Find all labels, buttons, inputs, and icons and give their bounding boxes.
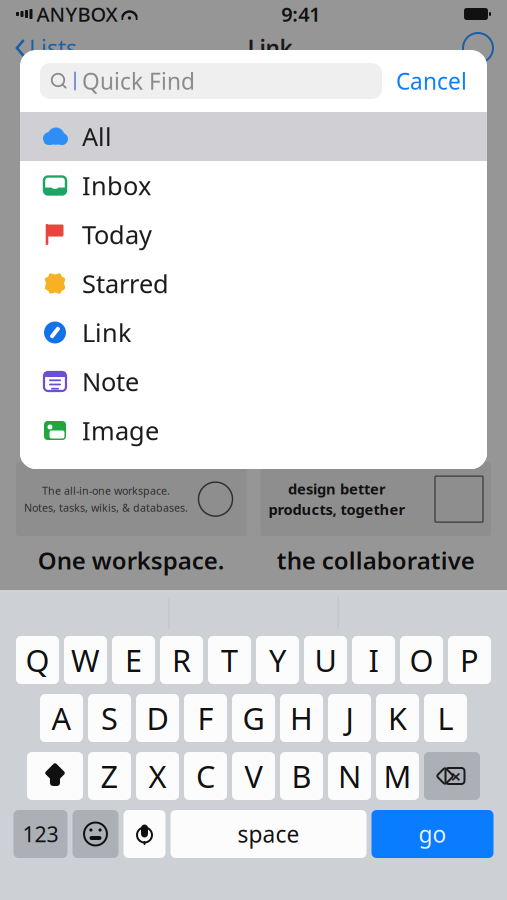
staticText: 123 — [22, 820, 58, 848]
staticText: Link — [82, 316, 132, 349]
button[interactable]: X — [136, 752, 179, 800]
staticText: Image — [82, 414, 159, 447]
button[interactable]: All — [20, 112, 487, 161]
staticText: T — [221, 640, 238, 680]
staticText: R — [172, 640, 191, 680]
staticText: Link — [247, 33, 292, 63]
staticText: Y — [269, 640, 286, 680]
staticText: the collaborative — [277, 544, 475, 576]
staticText: Q — [25, 640, 49, 680]
staticText: Inbox — [82, 169, 151, 202]
button[interactable]: G — [232, 694, 275, 742]
button[interactable]: V — [232, 752, 275, 800]
staticText: Starred — [82, 267, 169, 300]
staticText: U — [314, 640, 336, 680]
staticText: 9:41 — [281, 1, 320, 27]
button[interactable]: M — [376, 752, 419, 800]
button[interactable]: Link — [20, 308, 487, 357]
staticText: Note — [82, 365, 139, 398]
staticText: products, together — [268, 500, 405, 519]
button[interactable]: N — [328, 752, 371, 800]
button[interactable]: 123 — [13, 810, 67, 858]
staticText: go — [418, 819, 446, 849]
staticText: S — [101, 698, 118, 738]
staticText: M — [383, 756, 411, 796]
button[interactable]: J — [328, 694, 371, 742]
staticText: V — [244, 756, 262, 796]
button[interactable]: Today — [20, 210, 487, 259]
button[interactable]: W — [64, 636, 107, 684]
staticText: Today — [82, 218, 152, 251]
staticText: N — [338, 756, 361, 796]
staticText: K — [388, 698, 407, 738]
button[interactable]: B — [280, 752, 323, 800]
staticText: Cancel — [396, 66, 467, 96]
staticText: One workspace. — [38, 544, 225, 576]
staticText: B — [291, 756, 311, 796]
staticText: C — [196, 756, 215, 796]
staticText: F — [197, 698, 213, 738]
button[interactable]: Inbox — [20, 161, 487, 210]
button[interactable]: Dictation — [123, 810, 165, 858]
staticText: ANYBOX — [36, 1, 117, 27]
staticText: P — [460, 640, 479, 680]
button[interactable]: Q — [16, 636, 59, 684]
staticText: design better — [288, 479, 386, 499]
button[interactable]: S — [88, 694, 131, 742]
button[interactable]: Image — [20, 406, 487, 455]
staticText: Lists — [29, 33, 77, 63]
button[interactable]: O — [400, 636, 443, 684]
button[interactable]: E — [112, 636, 155, 684]
staticText: Quick Find — [82, 66, 195, 96]
button[interactable]: Note — [20, 357, 487, 406]
staticText: O — [409, 640, 433, 680]
staticText: Notes, tasks, wikis, & databases. — [24, 501, 188, 515]
staticText: G — [242, 698, 264, 738]
button[interactable]: Shift — [27, 752, 83, 800]
staticText: space — [237, 819, 299, 849]
button[interactable]: I — [352, 636, 395, 684]
staticText: × — [450, 764, 461, 788]
button[interactable]: P — [448, 636, 491, 684]
button[interactable]: Z — [88, 752, 131, 800]
staticText: H — [290, 698, 313, 738]
button[interactable]: Starred — [20, 259, 487, 308]
button[interactable]: A — [40, 694, 83, 742]
button[interactable]: Y — [256, 636, 299, 684]
button[interactable]: K — [376, 694, 419, 742]
button[interactable]: U — [304, 636, 347, 684]
staticText: The all-in-one workspace. — [42, 483, 170, 498]
button[interactable]: space — [170, 810, 366, 858]
button[interactable]: go — [371, 810, 493, 858]
button[interactable]: L — [424, 694, 467, 742]
button[interactable]: Emoji — [72, 810, 118, 858]
staticText: All — [82, 120, 112, 153]
staticText: X — [148, 756, 166, 796]
button[interactable]: H — [280, 694, 323, 742]
staticText: E — [125, 640, 142, 680]
button[interactable]: D — [136, 694, 179, 742]
button[interactable]: R — [160, 636, 203, 684]
button[interactable]: C — [184, 752, 227, 800]
staticText: I — [368, 640, 378, 680]
staticText: J — [345, 698, 353, 738]
button[interactable]: T — [208, 636, 251, 684]
staticText: L — [437, 698, 453, 738]
staticText: A — [51, 698, 71, 738]
button[interactable]: Cancel — [396, 60, 467, 102]
button[interactable]: Delete — [424, 752, 480, 800]
staticText: W — [71, 640, 100, 680]
staticText: Z — [100, 756, 118, 796]
button[interactable]: F — [184, 694, 227, 742]
staticText: D — [146, 698, 168, 738]
